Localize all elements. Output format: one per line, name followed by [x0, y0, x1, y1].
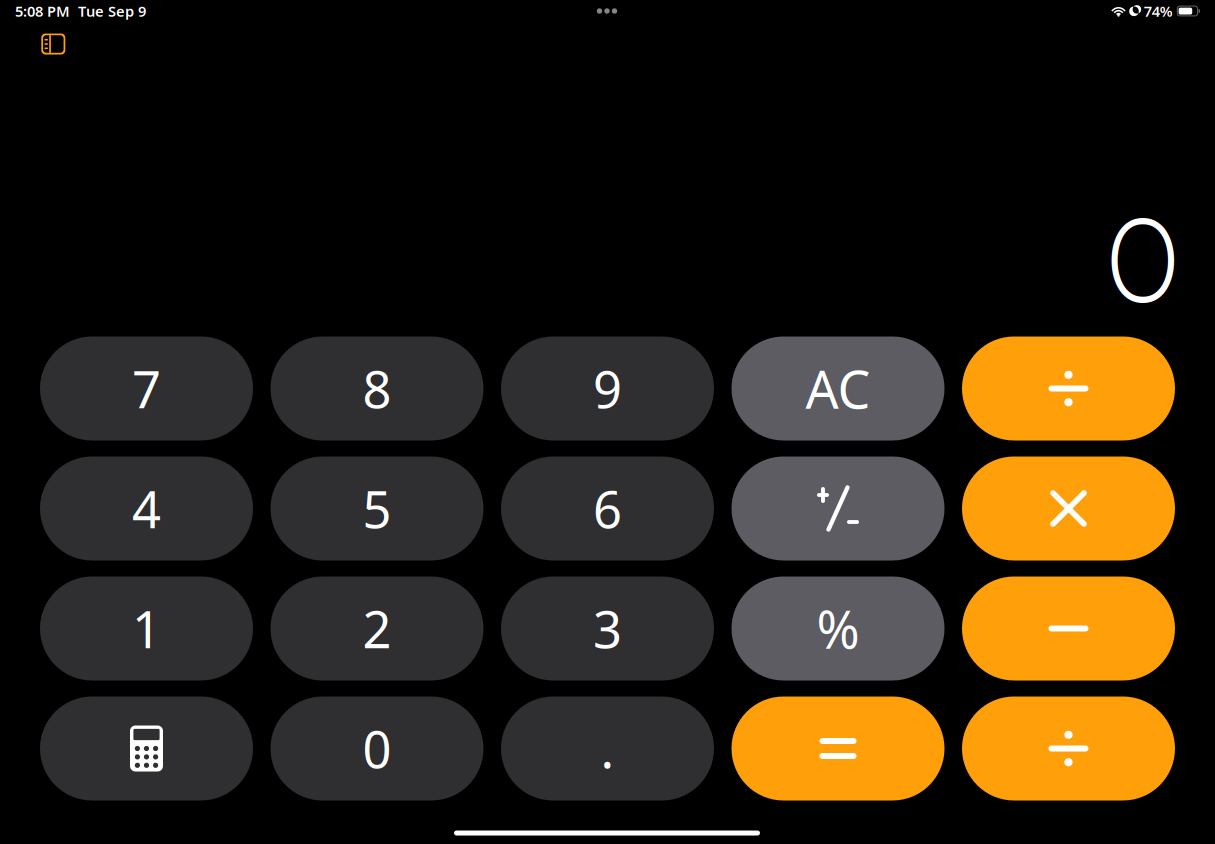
staticText: AC: [805, 354, 870, 423]
button[interactable]: 7: [40, 336, 253, 440]
button[interactable]: 8: [270, 336, 483, 440]
button[interactable]: 6: [501, 456, 714, 560]
staticText: 4: [132, 475, 161, 542]
button[interactable]: 9: [501, 336, 714, 440]
staticText: 2: [362, 595, 391, 662]
button[interactable]: 3: [501, 576, 714, 680]
staticText: 3: [593, 595, 622, 662]
button[interactable]: 2: [270, 576, 483, 680]
staticText: 74%: [1144, 1, 1173, 21]
button[interactable]: Divide: [962, 696, 1175, 800]
button[interactable]: %: [731, 576, 944, 680]
button[interactable]: 0: [270, 696, 483, 800]
staticText: 8: [362, 355, 391, 422]
button[interactable]: AC: [731, 336, 944, 440]
button[interactable]: Equals: [731, 696, 944, 800]
button[interactable]: Toggle sign: [731, 456, 944, 560]
staticText: 5: [362, 475, 391, 542]
button[interactable]: .: [501, 696, 714, 800]
staticText: 9: [593, 355, 622, 422]
staticText: .: [600, 715, 614, 782]
staticText: 5:08 PM: [15, 1, 70, 21]
button[interactable]: 4: [40, 456, 253, 560]
button[interactable]: Calculator mode: [40, 696, 253, 800]
button[interactable]: Show sidebar: [31, 26, 75, 62]
button[interactable]: Multitasking controls: [585, 0, 629, 22]
button[interactable]: 5: [270, 456, 483, 560]
staticText: 0: [362, 715, 391, 782]
button[interactable]: Minus: [962, 576, 1175, 680]
staticText: 7: [132, 355, 161, 422]
button[interactable]: 1: [40, 576, 253, 680]
button[interactable]: Multiply: [962, 456, 1175, 560]
button[interactable]: Divide: [962, 336, 1175, 440]
staticText: Tue Sep 9: [70, 1, 146, 21]
staticText: %: [816, 594, 859, 663]
staticText: 1: [132, 595, 161, 662]
staticText: 0: [1108, 190, 1178, 330]
staticText: 6: [593, 475, 622, 542]
